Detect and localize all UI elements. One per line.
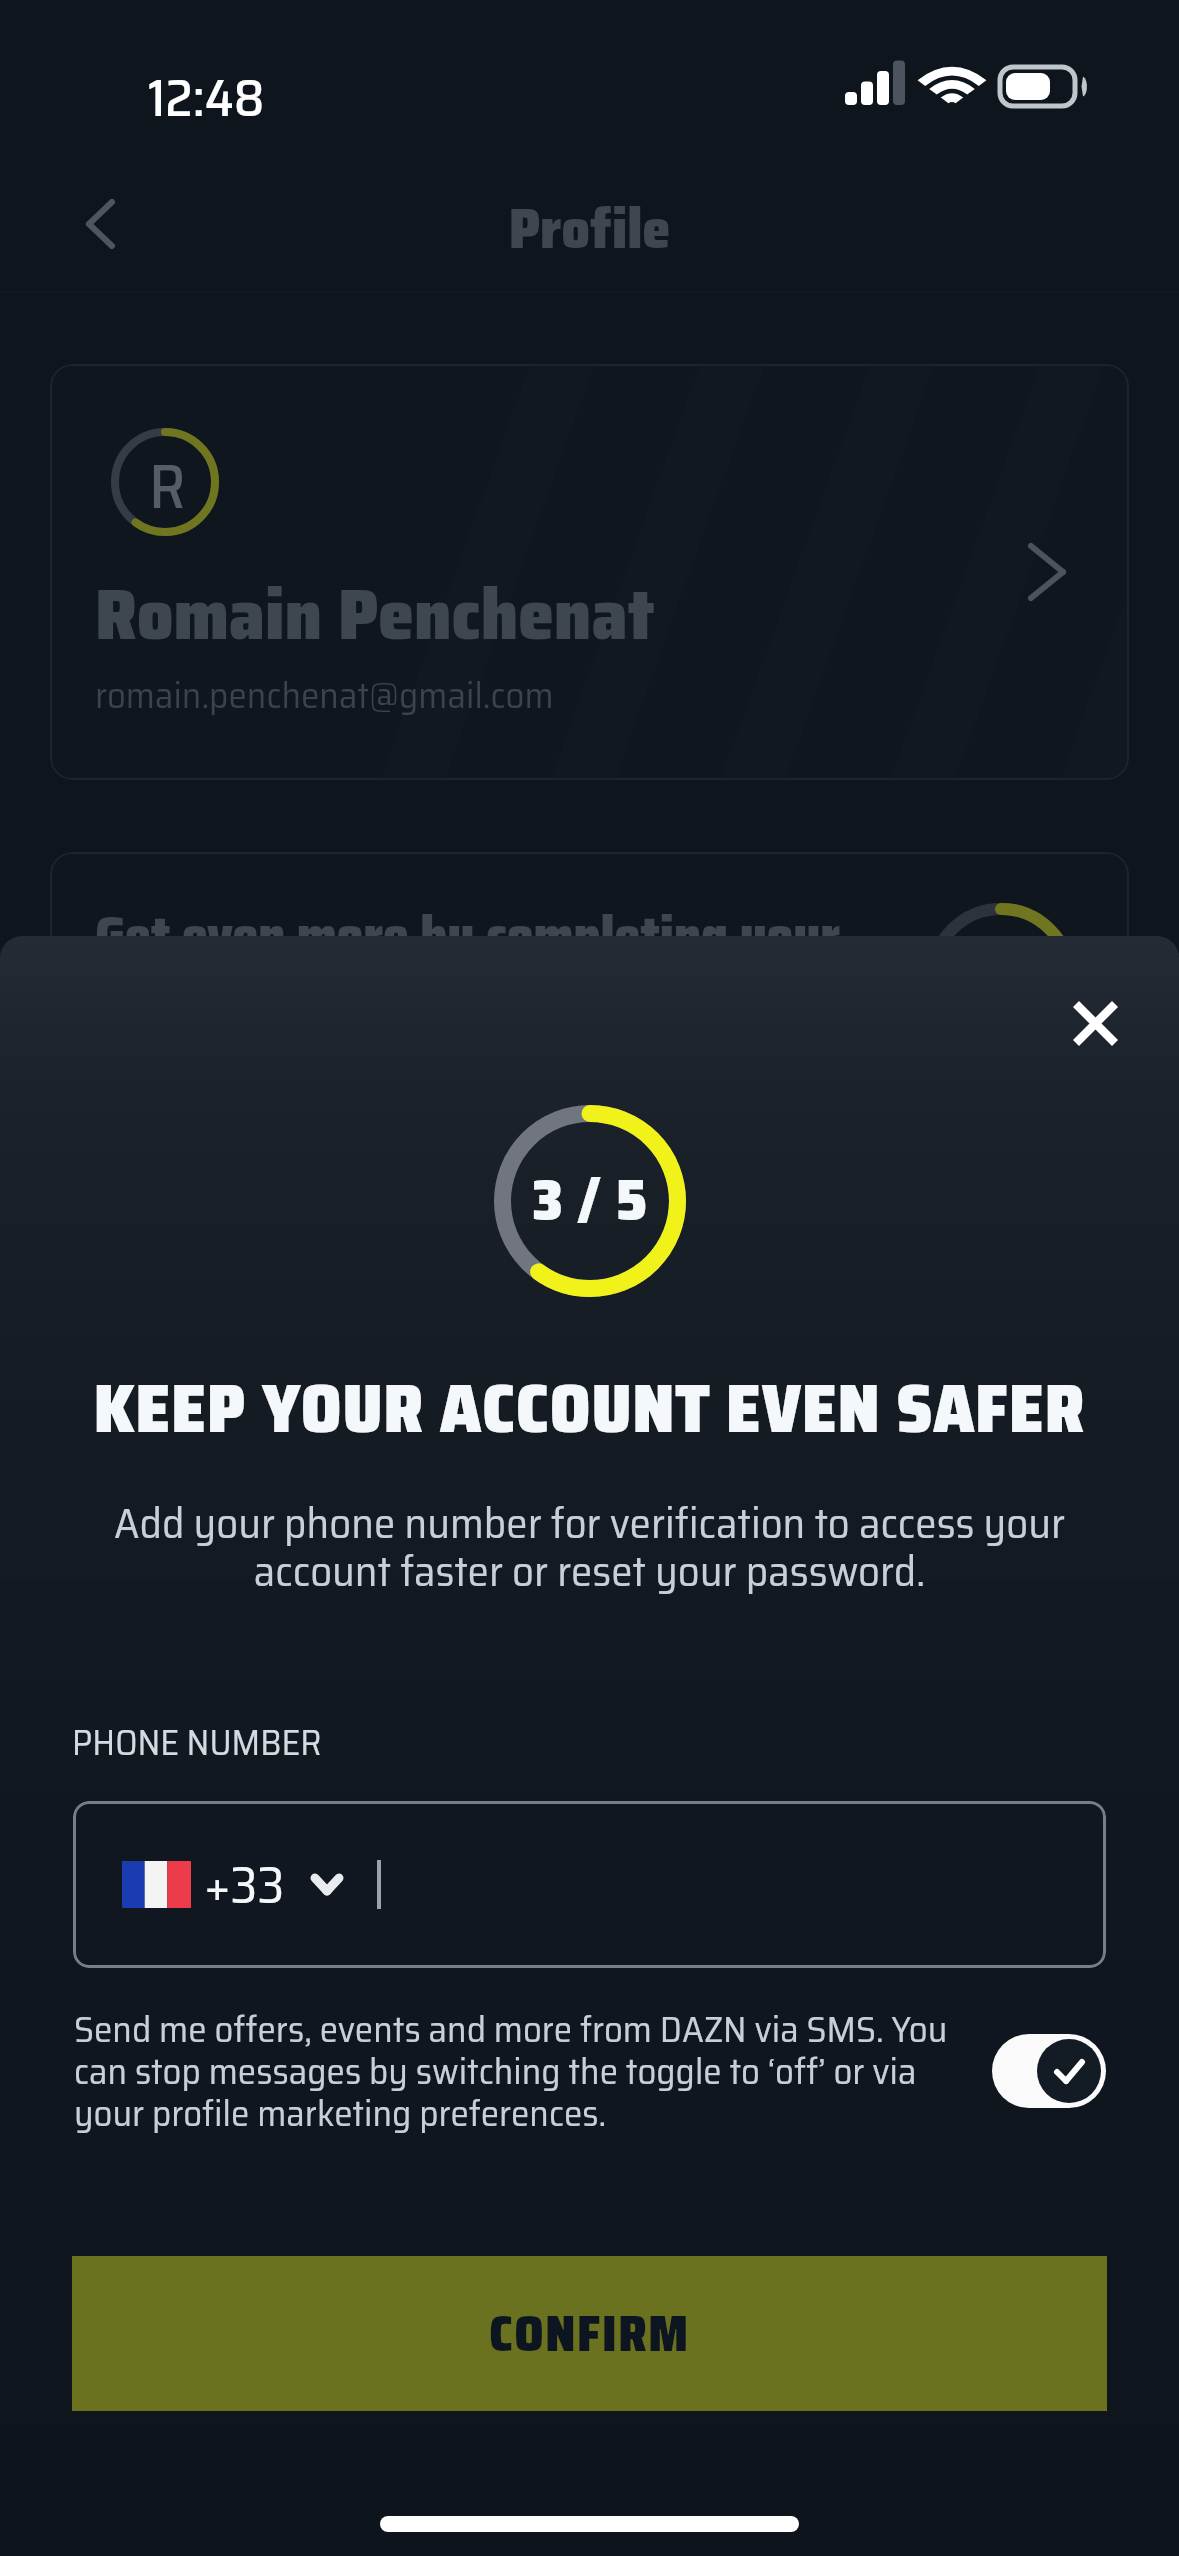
button[interactable]: Get even more by completing your bbox=[50, 852, 1129, 1152]
button[interactable]: SMS marketing toggle, on bbox=[992, 2034, 1106, 2108]
staticText: R bbox=[149, 438, 186, 536]
staticText: Send me offers, events and more from DAZ… bbox=[74, 2000, 964, 2143]
staticText: Get even more by completing your bbox=[95, 894, 841, 976]
staticText: romain.penchenat@gmail.com bbox=[95, 666, 554, 724]
staticText: 3 / 5 bbox=[532, 1154, 649, 1245]
staticText: Profile bbox=[0, 184, 1179, 272]
button[interactable]: CONFIRM bbox=[72, 2256, 1107, 2411]
staticText: Romain Penchenat bbox=[95, 557, 655, 670]
button[interactable]: +33 bbox=[73, 1801, 1106, 1968]
staticText: KEEP YOUR ACCOUNT EVEN SAFER bbox=[30, 1355, 1149, 1462]
button[interactable]: Back bbox=[62, 186, 138, 262]
staticText: PHONE NUMBER bbox=[72, 1714, 322, 1771]
staticText: CONFIRM bbox=[489, 2295, 690, 2372]
staticText: Add your phone number for verification t… bbox=[100, 1489, 1079, 1604]
staticText: 12:48 bbox=[148, 57, 265, 139]
staticText: +33 bbox=[204, 1844, 285, 1926]
button[interactable]: R bbox=[50, 364, 1129, 780]
button[interactable]: Close bbox=[1029, 958, 1161, 1088]
